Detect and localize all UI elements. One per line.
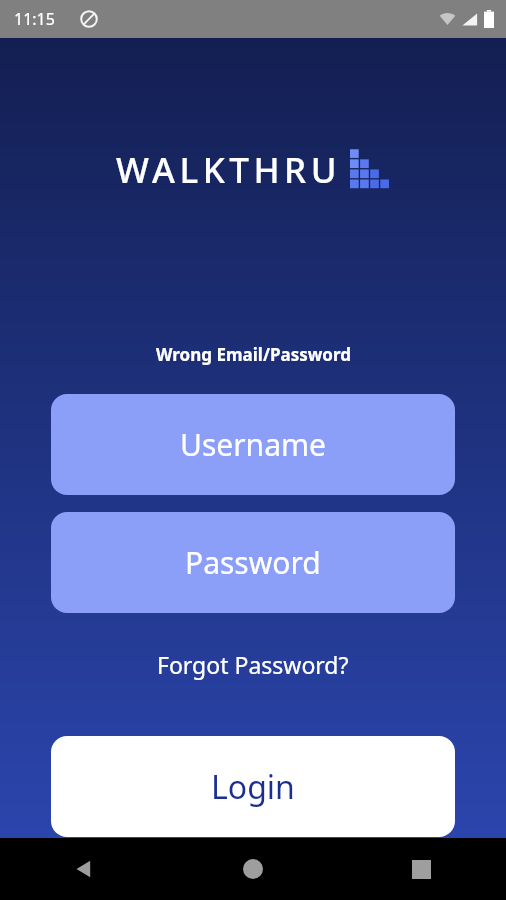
staticText: WALKTHRU [116, 146, 342, 194]
button[interactable]: Password [51, 512, 455, 613]
button[interactable]: Recent apps [337, 838, 506, 900]
button[interactable]: Home [168, 838, 337, 900]
staticText: Wrong Email/Password [156, 343, 351, 366]
button[interactable]: Username [51, 394, 455, 495]
staticText: Username [180, 424, 326, 465]
button[interactable]: Login [51, 736, 455, 837]
staticText: Forgot Password? [157, 649, 349, 680]
button[interactable]: Back [0, 838, 168, 900]
staticText: Login [211, 765, 295, 809]
staticText: 11:15 [14, 8, 55, 30]
button[interactable]: Forgot Password? [147, 645, 359, 684]
staticText: Password [185, 542, 321, 583]
